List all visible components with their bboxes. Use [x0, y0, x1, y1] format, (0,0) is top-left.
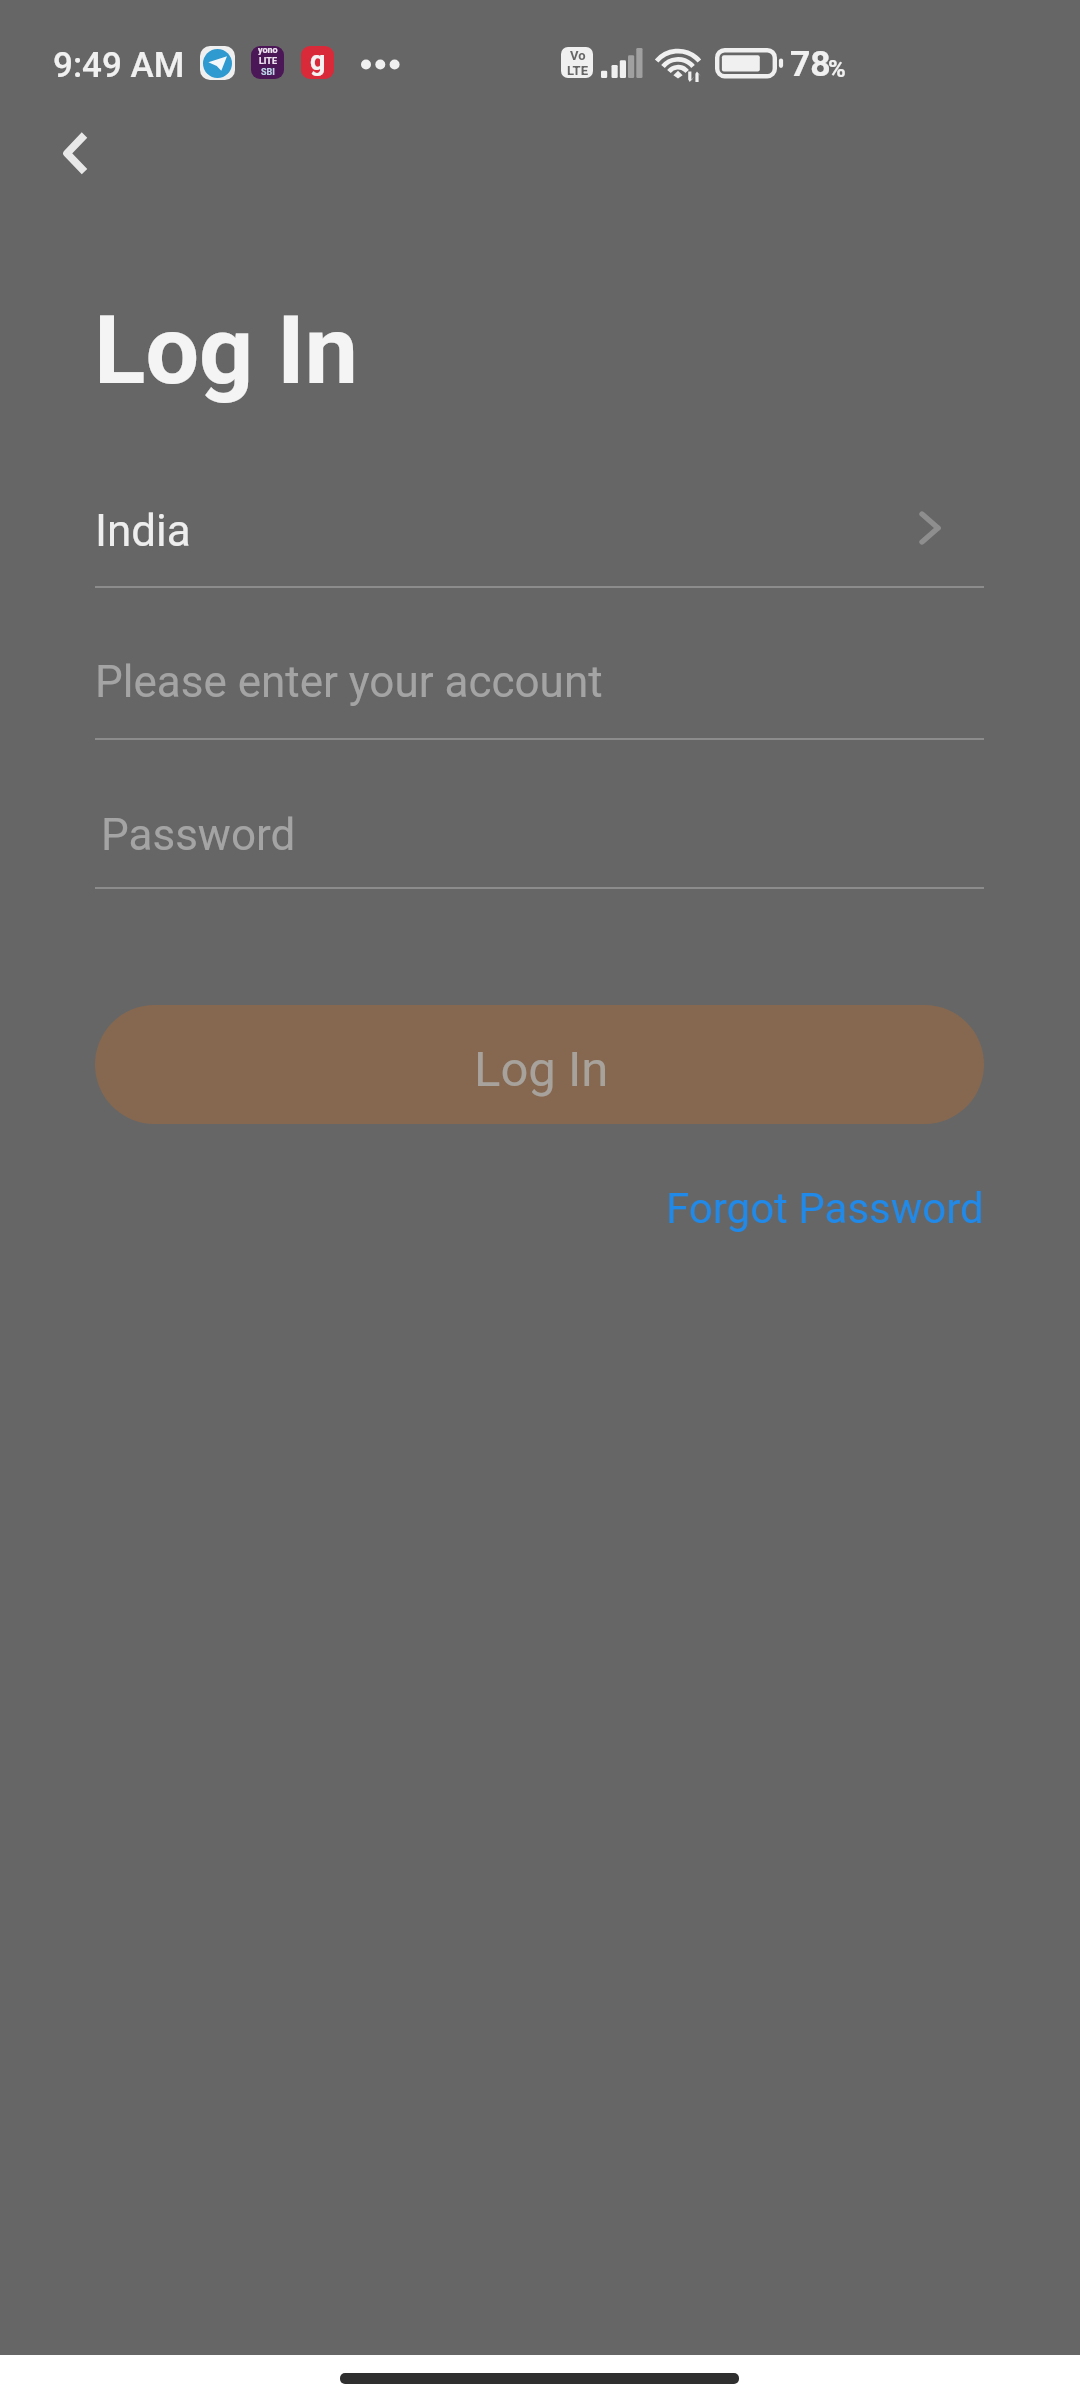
button[interactable]: Country, India: [0, 490, 1080, 586]
staticText: Log In: [94, 295, 358, 406]
staticText: SBI: [261, 67, 275, 78]
other: Home: [340, 2373, 739, 2384]
staticText: g: [310, 46, 326, 77]
button[interactable]: Log In: [95, 1005, 984, 1124]
staticText: LTE: [567, 63, 588, 78]
staticText: 9:49 AM: [53, 45, 185, 86]
button[interactable]: Password: [0, 791, 1080, 887]
staticText: Password: [101, 809, 296, 861]
staticText: %: [828, 55, 846, 83]
staticText: Forgot Password: [666, 1184, 984, 1233]
staticText: yono: [258, 46, 278, 56]
staticText: India: [95, 505, 191, 557]
staticText: Log In: [474, 1041, 609, 1098]
button[interactable]: Back: [11, 105, 115, 201]
staticText: Please enter your account: [95, 656, 603, 708]
staticText: 78: [790, 43, 831, 85]
button[interactable]: Forgot Password: [655, 1172, 995, 1244]
staticText: Vo: [570, 48, 586, 63]
staticText: LITE: [259, 56, 278, 67]
other: Choose country: [919, 511, 941, 545]
button[interactable]: Account: [0, 642, 1080, 738]
